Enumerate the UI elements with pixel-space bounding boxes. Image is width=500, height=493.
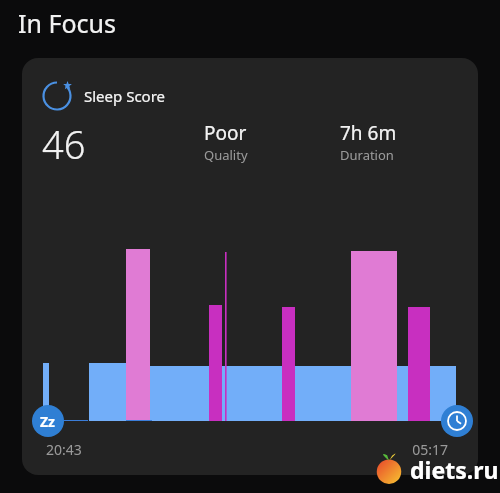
button[interactable]: Wake time [441, 405, 473, 437]
staticText: 05:17 [412, 440, 448, 459]
staticText: In Focus [18, 6, 116, 40]
button[interactable]: Sleep [22, 58, 478, 475]
staticText: 7h 6m [340, 120, 397, 146]
staticText: 46 [42, 118, 86, 170]
staticText: Zz [40, 412, 56, 431]
staticText: Duration [340, 146, 394, 164]
staticText: Sleep Score [84, 86, 166, 106]
button[interactable]: Sleep start [32, 405, 64, 437]
staticText: Quality [204, 146, 248, 164]
staticText: Poor [204, 120, 247, 146]
staticText: diets.ru [410, 454, 499, 485]
staticText: 20:43 [46, 440, 82, 459]
other: Sleep [42, 81, 72, 111]
